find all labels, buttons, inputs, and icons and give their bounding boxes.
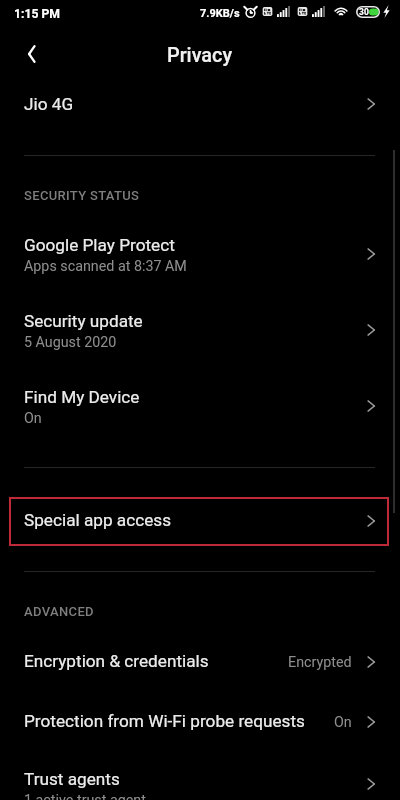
staticText: On (334, 714, 352, 731)
staticText: SECURITY STATUS (24, 188, 140, 203)
button[interactable] (0, 640, 400, 686)
button[interactable]: Back (8, 32, 52, 76)
staticText: Protection from Wi-Fi probe requests (24, 711, 305, 731)
staticText: Encrypted (288, 654, 352, 671)
staticText: Special app access (24, 510, 172, 530)
staticText: 7.9KB/s (200, 7, 240, 20)
staticText: 1 active trust agent (24, 792, 146, 800)
staticText: Trust agents (24, 769, 120, 789)
staticText: Find My Device (24, 387, 140, 407)
staticText: ADVANCED (24, 604, 94, 619)
button[interactable] (0, 758, 400, 800)
staticText: Apps scanned at 8:37 AM (24, 258, 187, 275)
button[interactable] (0, 298, 400, 360)
staticText: Security update (24, 311, 143, 331)
button[interactable] (9, 497, 389, 546)
button[interactable] (0, 374, 400, 436)
staticText: Privacy (167, 44, 233, 67)
staticText: Encryption & credentials (24, 651, 209, 671)
staticText: 1:15 PM (14, 7, 60, 21)
staticText: 30 (359, 7, 369, 17)
staticText: Jio 4G (24, 94, 74, 114)
button[interactable] (0, 80, 400, 132)
button[interactable] (0, 222, 400, 284)
staticText: 5 August 2020 (24, 334, 117, 351)
staticText: Google Play Protect (24, 235, 175, 255)
button[interactable] (0, 700, 400, 746)
staticText: On (24, 410, 42, 427)
